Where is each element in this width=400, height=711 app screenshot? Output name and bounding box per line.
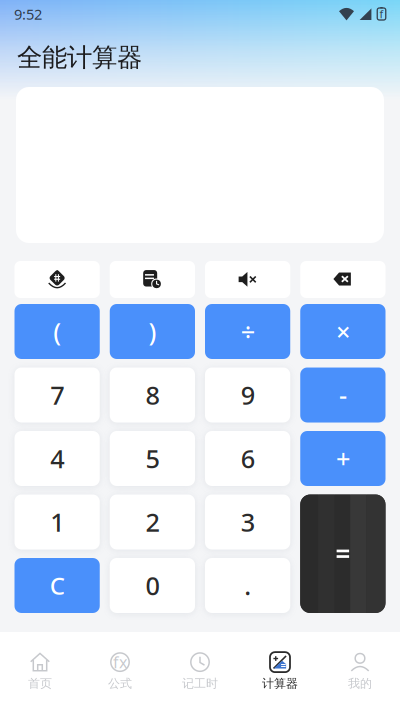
staticText: ) [148,315,156,348]
staticText: 8 [145,378,159,412]
button[interactable]: 2 [110,494,195,549]
button[interactable]: - [300,367,385,422]
button[interactable]: 3 [205,494,290,549]
staticText: 记工时 [182,676,218,691]
staticText: 4 [50,442,64,475]
staticText: 6 [241,442,255,475]
staticText: 7 [50,378,64,412]
button[interactable]: 首页 [0,643,80,699]
button[interactable]: 记工时 [160,643,240,699]
staticText: 0 [145,569,159,602]
staticText: 计算器 [262,676,298,691]
button[interactable]: 计算器 [240,643,320,699]
button[interactable]: 4 [14,431,100,486]
staticText: 公式 [108,676,132,691]
button[interactable]: 9 [205,367,290,422]
button[interactable]: 静音 [205,261,290,298]
button[interactable]: . [205,558,290,613]
staticText: + [336,442,350,475]
button[interactable]: 等于 [300,494,385,613]
staticText: . [244,569,251,602]
button[interactable]: 退格 [300,261,385,298]
staticText: 1 [50,505,64,539]
button[interactable]: ) [110,304,195,359]
staticText: 9 [241,378,255,412]
button[interactable]: 7 [14,367,100,422]
staticText: ÷ [241,315,255,348]
button[interactable]: 5 [110,431,195,486]
staticText: 3 [241,505,255,539]
staticText: 我的 [348,676,372,691]
staticText: f [379,7,383,21]
staticText: fx [113,651,127,673]
button[interactable]: + [300,431,385,486]
button[interactable]: C [14,558,100,613]
button[interactable]: 单位换算 [14,261,100,298]
button[interactable]: × [300,304,385,359]
staticText: × [336,315,350,348]
button[interactable]: 6 [205,431,290,486]
button[interactable]: fx [80,643,160,699]
button[interactable]: ÷ [205,304,290,359]
button[interactable]: 我的 [320,643,400,699]
staticText: C [50,570,65,601]
button[interactable]: 8 [110,367,195,422]
staticText: 9:52 [14,4,42,24]
staticText: ( [53,315,61,348]
staticText: 首页 [28,676,52,691]
staticText: 全能计算器 [17,42,142,73]
button[interactable]: 1 [14,494,100,549]
button[interactable]: 历史记录 [110,261,195,298]
button[interactable]: 0 [110,558,195,613]
staticText: 5 [145,442,159,475]
button[interactable]: ( [14,304,100,359]
staticText: 2 [145,505,159,539]
staticText: - [339,378,347,412]
